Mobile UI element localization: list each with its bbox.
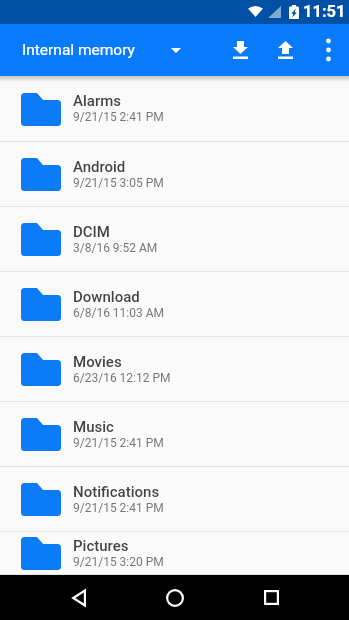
button[interactable]: Android xyxy=(0,142,349,207)
button[interactable]: Pictures xyxy=(0,532,349,575)
button[interactable] xyxy=(263,24,307,76)
staticText: DCIM xyxy=(73,223,110,241)
button[interactable]: Movies xyxy=(0,337,349,402)
button[interactable] xyxy=(217,24,263,76)
button[interactable]: Download xyxy=(0,272,349,337)
staticText: Android xyxy=(73,158,126,176)
staticText: 9/21/15 2:41 PM xyxy=(73,436,164,450)
staticText: 9/21/15 2:41 PM xyxy=(73,501,164,515)
staticText: 9/21/15 3:20 PM xyxy=(73,555,164,569)
staticText: Movies xyxy=(73,353,122,371)
staticText: Internal memory xyxy=(22,41,135,59)
button[interactable]: DCIM xyxy=(0,207,349,272)
button[interactable]: Alarms xyxy=(0,76,349,142)
button[interactable] xyxy=(247,575,295,620)
staticText: Download xyxy=(73,288,140,306)
button[interactable] xyxy=(307,24,349,76)
staticText: 9/21/15 2:41 PM xyxy=(73,110,164,124)
staticText: 6/23/16 12:12 PM xyxy=(73,371,171,385)
button[interactable]: Music xyxy=(0,402,349,467)
button[interactable] xyxy=(151,575,199,620)
button[interactable]: Internal memory xyxy=(22,41,181,59)
staticText: 6/8/16 11:03 AM xyxy=(73,306,165,320)
staticText: 11:51 xyxy=(303,2,346,21)
staticText: 3/8/16 9:52 AM xyxy=(73,241,158,255)
button[interactable]: Notifications xyxy=(0,467,349,532)
staticText: 9/21/15 3:05 PM xyxy=(73,176,164,190)
staticText: Pictures xyxy=(73,537,129,555)
staticText: Alarms xyxy=(73,92,122,110)
staticText: Music xyxy=(73,418,114,436)
button[interactable] xyxy=(55,575,103,620)
staticText: Notifications xyxy=(73,483,160,501)
